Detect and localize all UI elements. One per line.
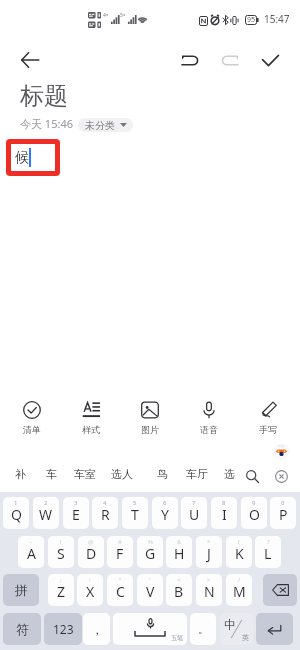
- button[interactable]: 1: [3, 497, 29, 529]
- button[interactable]: 选人: [107, 464, 137, 484]
- button[interactable]: (: [226, 536, 252, 568]
- staticText: 。: [198, 622, 209, 636]
- staticText: @: [88, 538, 94, 546]
- button[interactable]: Backspace: [263, 574, 297, 606]
- staticText: 符: [16, 621, 29, 637]
- staticText: 中: [224, 617, 236, 632]
- button[interactable]: 7: [181, 497, 207, 529]
- button[interactable]: Search: [243, 467, 261, 485]
- button[interactable]: 车室: [70, 464, 100, 484]
- staticText: Z: [57, 582, 66, 601]
- button[interactable]: ": [107, 574, 133, 606]
- button[interactable]: Space: [113, 613, 187, 645]
- staticText: %: [148, 538, 153, 546]
- staticText: I: [222, 505, 227, 524]
- button[interactable]: Done: [253, 43, 287, 77]
- button[interactable]: -: [18, 536, 44, 568]
- button[interactable]: ?: [255, 536, 281, 568]
- button[interactable]: 鸟: [153, 464, 172, 484]
- button[interactable]: 2: [33, 497, 59, 529]
- button[interactable]: %: [137, 536, 163, 568]
- staticText: M: [233, 582, 246, 601]
- staticText: 4ᴳ: [103, 12, 109, 19]
- staticText: >: [207, 576, 211, 584]
- staticText: &: [177, 538, 182, 546]
- button[interactable]: 图片: [123, 396, 177, 440]
- staticText: 图片: [141, 424, 159, 435]
- staticText: D: [86, 544, 97, 563]
- staticText: 英: [242, 633, 249, 642]
- button[interactable]: 0: [270, 497, 296, 529]
- staticText: 选: [224, 467, 235, 481]
- button[interactable]: 8: [211, 497, 237, 529]
- staticText: 五笔: [171, 634, 183, 642]
- button[interactable]: ': [137, 574, 163, 606]
- button[interactable]: 4: [92, 497, 118, 529]
- button[interactable]: 手写: [241, 396, 295, 440]
- staticText: *: [207, 538, 211, 546]
- staticText: 8: [222, 499, 226, 507]
- button[interactable]: >: [196, 574, 222, 606]
- button[interactable]: 9: [241, 497, 267, 529]
- staticText: A: [27, 544, 36, 563]
- staticText: ，: [91, 622, 103, 637]
- staticText: X: [86, 582, 95, 601]
- button[interactable]: Enter: [256, 613, 293, 645]
- staticText: L: [264, 544, 272, 563]
- button[interactable]: 语音: [182, 396, 236, 440]
- staticText: 4: [103, 499, 107, 507]
- staticText: F: [116, 544, 124, 563]
- button[interactable]: 未分类: [78, 118, 133, 132]
- staticText: S: [57, 544, 65, 563]
- button[interactable]: 中: [220, 613, 253, 645]
- button[interactable]: 补: [11, 464, 30, 484]
- button[interactable]: 123: [44, 613, 82, 645]
- staticText: 2: [44, 499, 48, 507]
- staticText: 95: [247, 15, 256, 25]
- button[interactable]: #: [107, 536, 133, 568]
- staticText: U: [189, 505, 200, 524]
- button[interactable]: ，: [83, 613, 110, 645]
- button[interactable]: 车: [42, 464, 61, 484]
- button[interactable]: !: [48, 536, 74, 568]
- staticText: :: [89, 576, 91, 584]
- staticText: !: [60, 538, 62, 546]
- button[interactable]: <: [166, 574, 192, 606]
- staticText: /: [238, 576, 241, 584]
- button[interactable]: 3: [63, 497, 89, 529]
- button[interactable]: Back: [13, 43, 47, 77]
- staticText: 拼: [15, 582, 28, 598]
- button[interactable]: Close keyboard: [272, 467, 290, 485]
- staticText: 候: [15, 149, 29, 167]
- button[interactable]: 。: [190, 613, 216, 645]
- staticText: Q: [11, 505, 22, 524]
- staticText: Y: [161, 505, 169, 524]
- button[interactable]: 清单: [5, 396, 59, 440]
- button[interactable]: Redo: [213, 43, 247, 77]
- staticText: 选人: [111, 467, 133, 481]
- button[interactable]: &: [166, 536, 192, 568]
- staticText: H: [174, 544, 185, 563]
- button[interactable]: 5: [122, 497, 148, 529]
- staticText: -: [30, 538, 32, 546]
- staticText: 语音: [200, 424, 218, 435]
- button[interactable]: *: [196, 536, 222, 568]
- button[interactable]: 样式: [64, 396, 118, 440]
- button[interactable]: 符: [3, 613, 41, 645]
- button[interactable]: :: [77, 574, 103, 606]
- button[interactable]: 选: [220, 464, 239, 484]
- button[interactable]: 6: [152, 497, 178, 529]
- button[interactable]: /: [226, 574, 252, 606]
- button[interactable]: @: [78, 536, 104, 568]
- button[interactable]: 拼: [3, 574, 39, 606]
- staticText: 5: [133, 499, 137, 507]
- staticText: 5ᴳ: [120, 12, 126, 19]
- staticText: J: [207, 544, 211, 563]
- button[interactable]: ;: [48, 574, 74, 606]
- button[interactable]: 车厅: [182, 464, 212, 484]
- staticText: 清单: [23, 424, 41, 435]
- staticText: R: [101, 505, 110, 524]
- staticText: 7: [192, 499, 196, 507]
- staticText: N: [204, 582, 215, 601]
- button[interactable]: Undo: [173, 43, 207, 77]
